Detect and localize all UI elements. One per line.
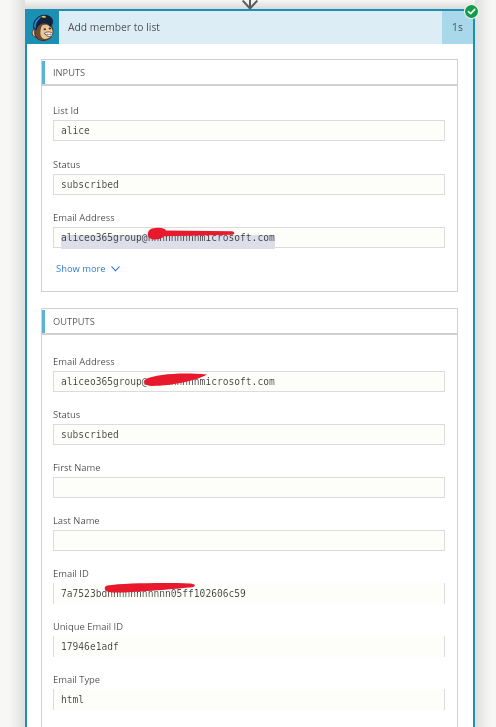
staticText: INPUTS	[53, 66, 86, 79]
staticText: alice	[61, 125, 90, 136]
staticText: Add member to list	[68, 20, 160, 34]
button[interactable]: INPUTS	[41, 59, 458, 85]
staticText: 7a7523bdnnnnnnnnnnn05ff102606c59	[61, 588, 246, 599]
button[interactable]: Add member to list	[25, 9, 475, 44]
button[interactable]: 17946e1adf	[53, 636, 445, 657]
button[interactable]: OUTPUTS	[41, 308, 458, 334]
staticText: Show more	[56, 262, 106, 275]
button[interactable]: subscribed	[53, 424, 445, 445]
button[interactable]: aliceo365group@nnnnnnnnnmicrosoft.com	[53, 227, 445, 248]
button[interactable]	[53, 477, 445, 498]
staticText: aliceo365group@nnnnnnnnnmicrosoft.com	[61, 376, 275, 387]
staticText: List Id	[53, 104, 79, 117]
button[interactable]	[53, 530, 445, 551]
button[interactable]: alice	[53, 120, 445, 141]
button[interactable]: html	[53, 689, 445, 710]
staticText: OUTPUTS	[53, 315, 95, 328]
staticText: Email Address	[53, 355, 115, 368]
staticText: aliceo365group@nnnnnnnnnmicrosoft.com	[61, 232, 275, 243]
staticText: Unique Email ID	[53, 620, 124, 633]
button[interactable]: 1s	[442, 9, 473, 44]
staticText: 17946e1adf	[61, 641, 119, 652]
staticText: Email Type	[53, 673, 101, 686]
staticText: subscribed	[61, 179, 119, 190]
staticText: 1s	[452, 20, 463, 34]
staticText: subscribed	[61, 429, 119, 440]
other: Succeeded	[464, 4, 479, 19]
staticText: Email ID	[53, 567, 89, 580]
staticText: First Name	[53, 461, 101, 474]
button[interactable]: 7a7523bdnnnnnnnnnnn05ff102606c59	[53, 583, 445, 604]
staticText: Last Name	[53, 514, 100, 527]
button[interactable]: aliceo365group@nnnnnnnnnmicrosoft.com	[53, 371, 445, 392]
staticText: Status	[53, 158, 81, 171]
staticText: Email Address	[53, 211, 115, 224]
staticText: html	[61, 694, 85, 705]
staticText: Status	[53, 408, 81, 421]
button[interactable]: Show more	[56, 262, 120, 275]
button[interactable]: subscribed	[53, 174, 445, 195]
